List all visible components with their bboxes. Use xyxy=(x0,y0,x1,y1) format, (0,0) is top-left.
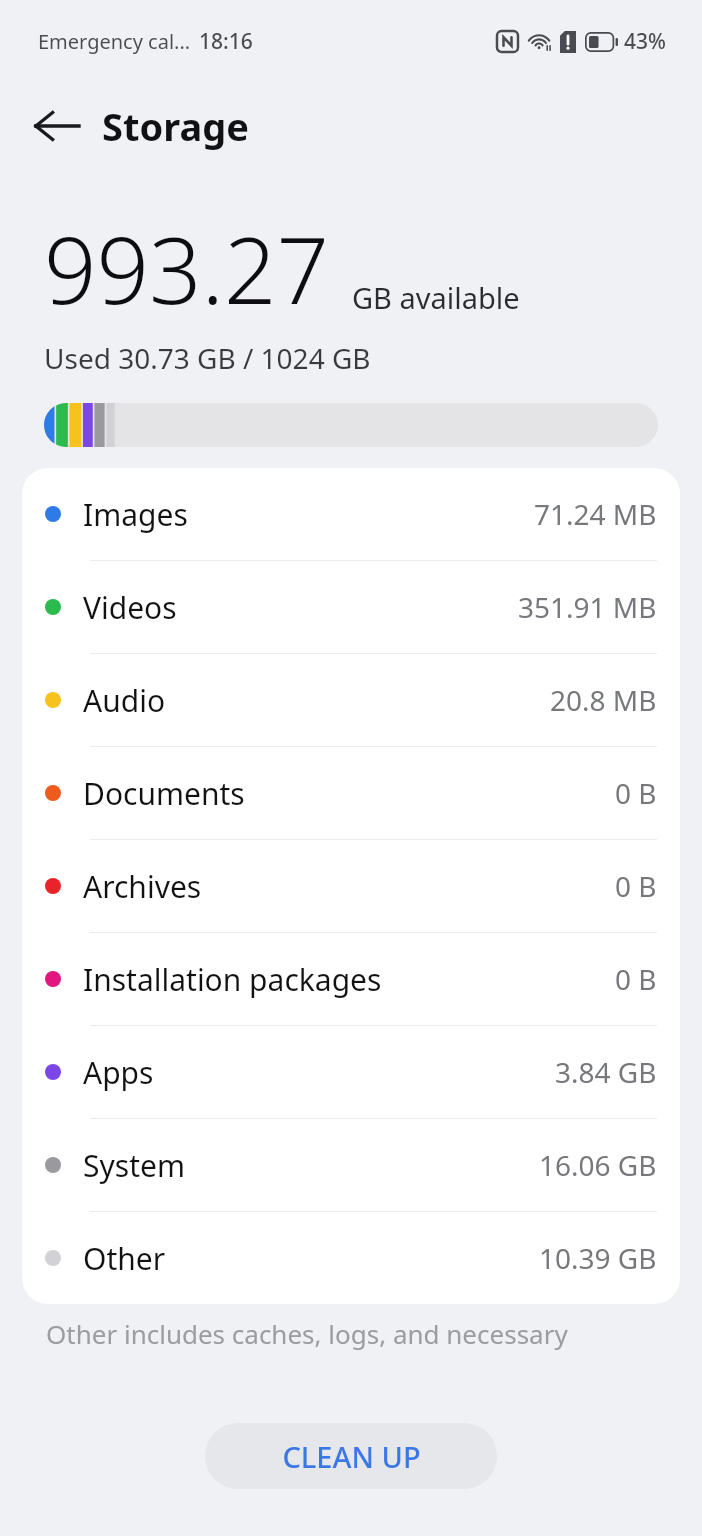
button[interactable]: Videos xyxy=(22,561,680,653)
staticText: Installation packages xyxy=(83,959,382,1000)
button[interactable]: Apps xyxy=(22,1026,680,1118)
staticText: Documents xyxy=(83,773,245,814)
staticText: Other xyxy=(83,1238,166,1279)
button[interactable]: Back xyxy=(26,95,88,157)
staticText: 993.27 xyxy=(44,206,330,331)
staticText: 0 B xyxy=(615,867,657,905)
staticText: Apps xyxy=(83,1052,154,1093)
staticText: Emergency cal... xyxy=(38,28,191,55)
staticText: 0 B xyxy=(615,960,657,998)
button[interactable]: CLEAN UP xyxy=(205,1423,497,1489)
staticText: Other includes caches, logs, and necessa… xyxy=(46,1316,568,1350)
staticText: 20.8 MB xyxy=(550,681,657,719)
staticText: 351.91 MB xyxy=(518,588,657,626)
staticText: GB available xyxy=(352,278,520,317)
staticText: CLEAN UP xyxy=(282,1437,421,1476)
staticText: Images xyxy=(83,494,188,535)
button[interactable]: Documents xyxy=(22,747,680,839)
button[interactable]: Audio xyxy=(22,654,680,746)
staticText: Archives xyxy=(83,866,202,907)
staticText: 3.84 GB xyxy=(555,1053,657,1091)
button[interactable]: System xyxy=(22,1119,680,1211)
staticText: Storage xyxy=(102,100,249,152)
staticText: 43% xyxy=(624,27,666,56)
staticText: System xyxy=(83,1145,185,1186)
button[interactable]: Archives xyxy=(22,840,680,932)
button[interactable]: Other xyxy=(22,1212,680,1304)
button[interactable]: Images xyxy=(22,468,680,560)
staticText: 0 B xyxy=(615,774,657,812)
staticText: Videos xyxy=(83,587,177,628)
staticText: Used 30.73 GB / 1024 GB xyxy=(44,339,371,377)
staticText: 16.06 GB xyxy=(539,1146,657,1184)
staticText: 71.24 MB xyxy=(534,495,657,533)
staticText: Audio xyxy=(83,680,166,721)
staticText: 18:16 xyxy=(199,27,253,56)
button[interactable]: Installation packages xyxy=(22,933,680,1025)
staticText: 10.39 GB xyxy=(539,1239,657,1277)
